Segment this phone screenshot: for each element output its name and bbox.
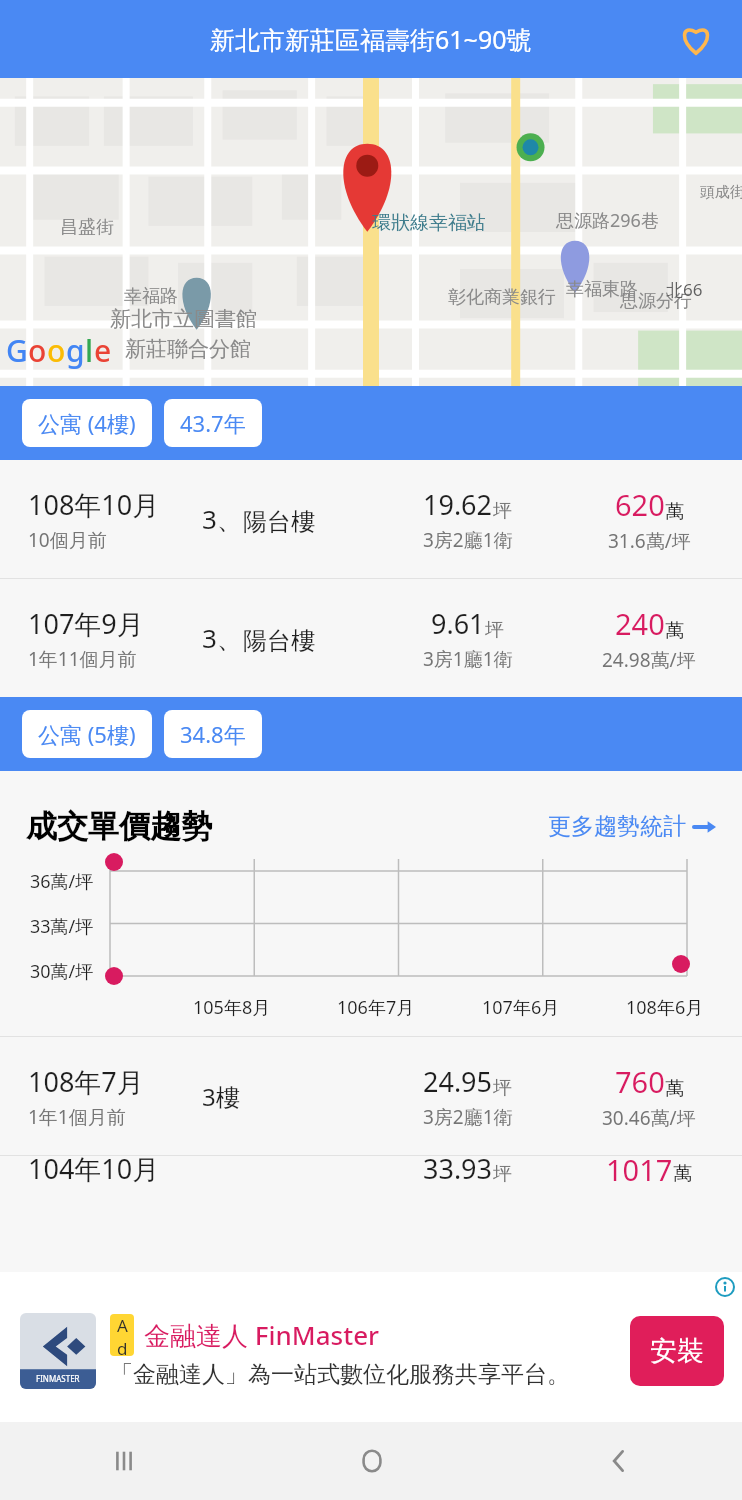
button[interactable]: Ad info — [712, 1274, 738, 1300]
button[interactable]: 更多趨勢統計 — [548, 812, 716, 841]
staticText: 1年1個月前 — [28, 1104, 126, 1130]
staticText: 105年8月 — [193, 995, 271, 1020]
staticText: 環狀線幸福站 — [372, 211, 486, 235]
staticText: 104年10月 — [28, 1150, 160, 1186]
staticText: 1017 — [606, 1150, 673, 1186]
staticText: g — [66, 330, 85, 371]
staticText: 陽台樓 — [243, 507, 315, 537]
staticText: 107年6月 — [482, 995, 560, 1020]
staticText: 「金融達人」為一站式數位化服務共享平台。 — [110, 1360, 570, 1389]
staticText: 108年10月 — [28, 486, 160, 523]
staticText: 108年6月 — [626, 995, 704, 1020]
staticText: 頭成街 — [700, 183, 742, 202]
staticText: 107年9月 — [28, 605, 144, 642]
staticText: 31.6萬/坪 — [608, 528, 691, 554]
staticText: 萬 — [665, 619, 684, 643]
staticText: 108年7月 — [28, 1063, 144, 1100]
staticText: 坪 — [493, 1076, 512, 1100]
staticText: 30.46萬/坪 — [602, 1105, 696, 1131]
staticText: 昌盛街 — [60, 216, 114, 239]
staticText: 620 — [615, 485, 665, 524]
staticText: 新北市新莊區福壽街61~90號 — [210, 22, 532, 56]
staticText: 新莊聯合分館 — [125, 336, 251, 362]
button[interactable]: Back — [495, 1422, 742, 1500]
staticText: 240 — [615, 604, 665, 643]
staticText: 33萬/坪 — [30, 914, 94, 939]
button[interactable]: 公寓 (5樓) — [22, 710, 152, 758]
staticText: 坪 — [485, 618, 504, 642]
staticText: 3、 — [202, 501, 243, 537]
staticText: 19.62 — [423, 486, 493, 523]
staticText: 106年7月 — [337, 995, 415, 1020]
staticText: 新北市立圖書館 — [110, 306, 257, 332]
staticText: 10個月前 — [28, 527, 107, 553]
staticText: 30萬/坪 — [30, 959, 94, 984]
staticText: 坪 — [493, 1162, 512, 1186]
staticText: 公寓 (4樓) — [38, 408, 136, 438]
button[interactable]: Recents — [0, 1422, 248, 1500]
staticText: 思源分行 — [620, 290, 692, 313]
staticText: 3房2廳1衛 — [423, 1104, 513, 1130]
staticText: o — [28, 330, 47, 371]
staticText: 3、 — [202, 620, 243, 656]
staticText: 24.98萬/坪 — [602, 647, 696, 673]
staticText: 34.8年 — [180, 719, 246, 749]
staticText: 成交單價趨勢 — [26, 807, 212, 846]
staticText: 金融達人 FinMaster — [144, 1317, 380, 1353]
staticText: 幸福路 — [124, 285, 178, 308]
staticText: o — [47, 330, 66, 371]
staticText: 3樓 — [202, 1080, 240, 1113]
button[interactable]: Home — [248, 1422, 495, 1500]
staticText: e — [94, 330, 112, 371]
staticText: 36萬/坪 — [30, 869, 94, 894]
button[interactable]: 108年7月 — [0, 1037, 742, 1155]
button[interactable]: 108年10月 — [0, 460, 742, 578]
button[interactable]: Favorite — [672, 15, 720, 63]
button[interactable]: 107年9月 — [0, 579, 742, 697]
staticText: 思源路296巷 — [556, 208, 659, 233]
staticText: 安裝 — [650, 1334, 704, 1368]
staticText: 33.93 — [423, 1150, 493, 1186]
staticText: 北66 — [666, 278, 703, 301]
staticText: 43.7年 — [180, 408, 246, 438]
staticText: 公寓 (5樓) — [38, 719, 136, 749]
button[interactable]: 公寓 (4樓) — [22, 399, 152, 447]
staticText: 萬 — [673, 1162, 692, 1186]
staticText: 幸福東路 — [566, 278, 638, 301]
staticText: G — [6, 330, 28, 371]
button[interactable]: 安裝 — [630, 1316, 724, 1386]
staticText: 3房1廳1衛 — [423, 646, 513, 672]
staticText: d — [117, 1337, 128, 1356]
staticText: 陽台樓 — [243, 626, 315, 656]
staticText: 自信街 — [36, 390, 90, 413]
staticText: 萬 — [665, 500, 684, 524]
staticText: FINMASTER — [36, 1373, 80, 1384]
button[interactable]: 43.7年 — [164, 399, 262, 447]
staticText: 彰化商業銀行 — [448, 286, 556, 309]
button[interactable]: 34.8年 — [164, 710, 262, 758]
staticText: 760 — [615, 1062, 665, 1101]
staticText: l — [85, 330, 94, 371]
staticText: 9.61 — [431, 605, 485, 642]
staticText: 更多趨勢統計 — [548, 812, 686, 841]
staticText: 1年11個月前 — [28, 646, 137, 672]
staticText: 坪 — [493, 499, 512, 523]
staticText: 萬 — [665, 1077, 684, 1101]
staticText: 3房2廳1衛 — [423, 527, 513, 553]
staticText: 24.95 — [423, 1063, 493, 1100]
staticText: A — [117, 1314, 128, 1337]
